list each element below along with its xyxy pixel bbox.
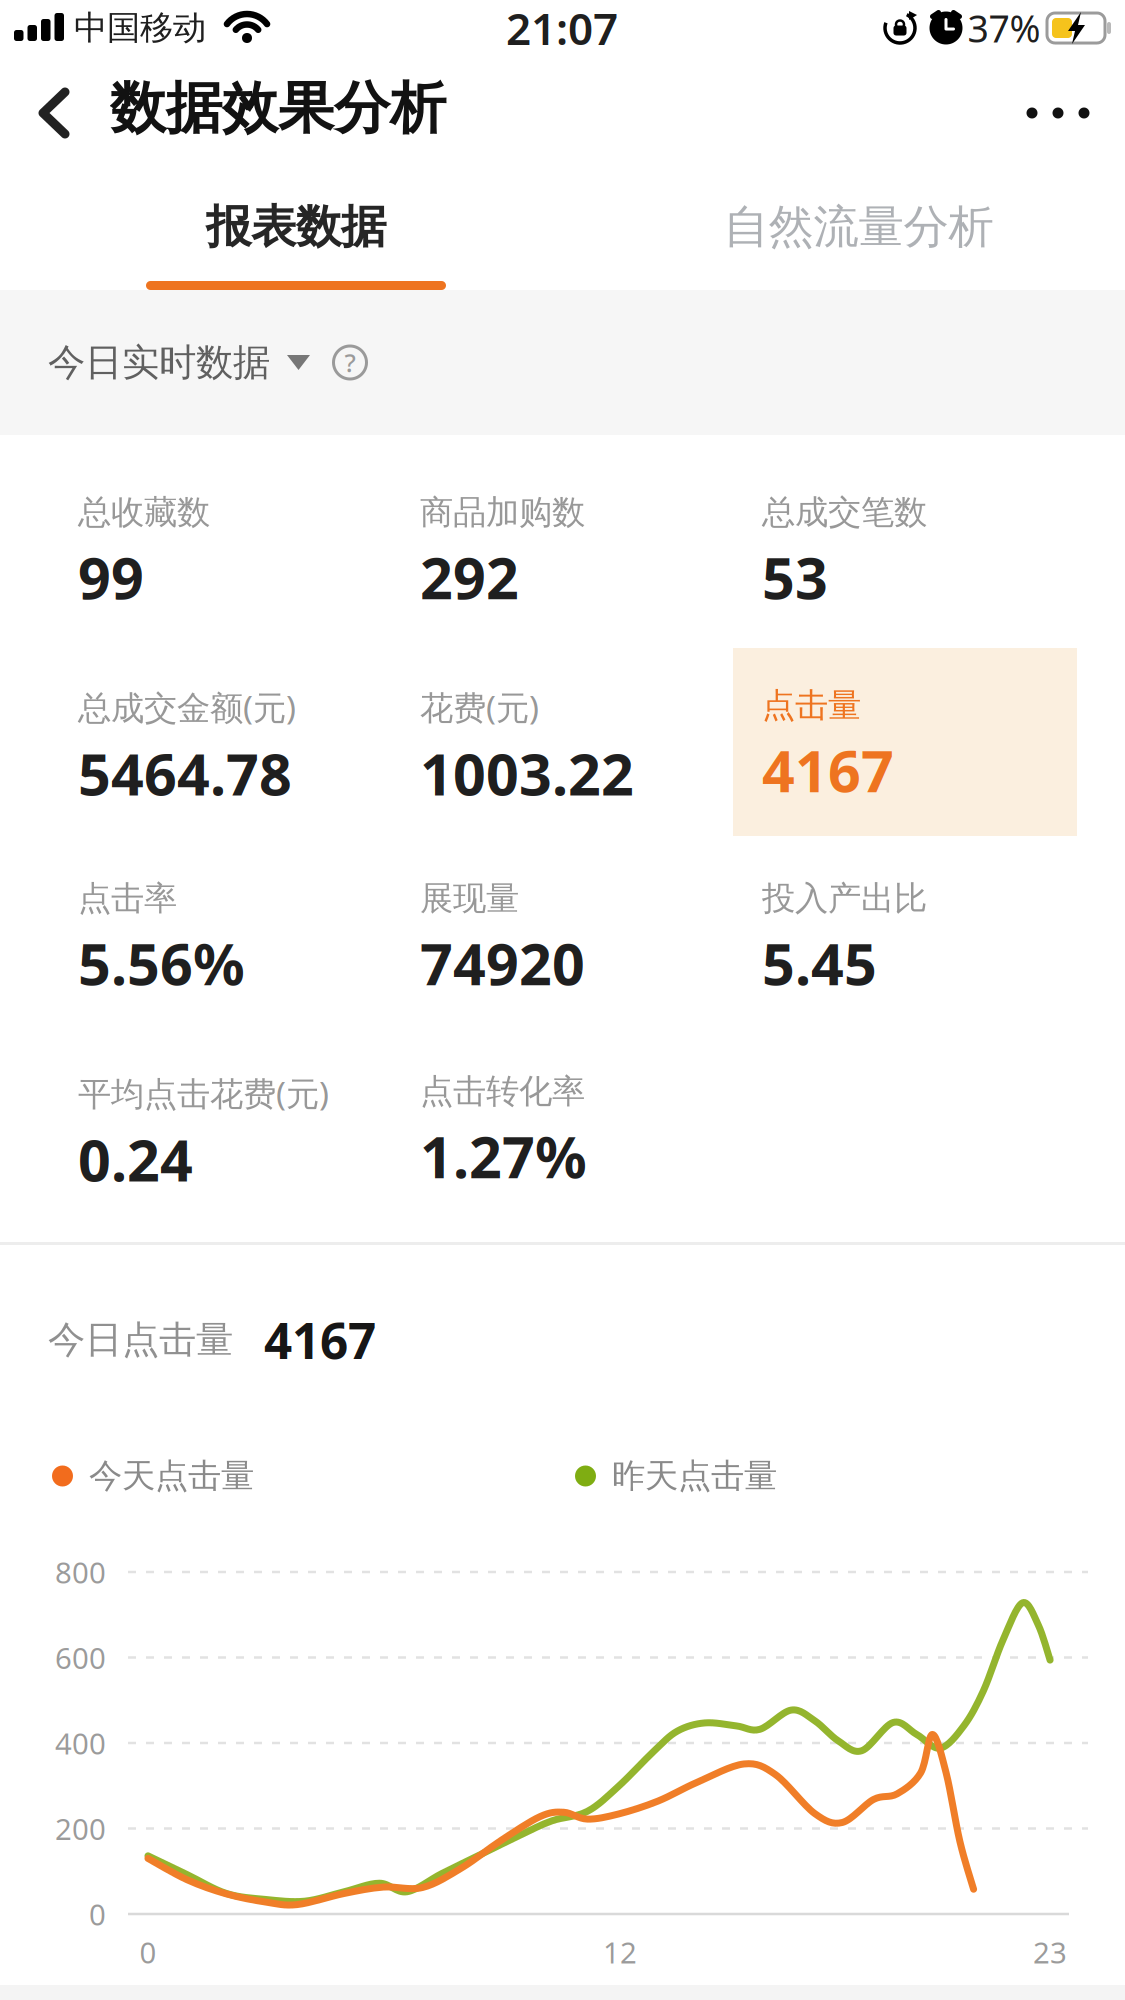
button[interactable]: 报表数据	[0, 172, 562, 282]
staticText: 5.56%	[78, 925, 245, 1001]
staticText: 昨天点击量	[612, 1455, 777, 1496]
staticText: 今天点击量	[89, 1455, 254, 1496]
staticText: 今日点击量	[48, 1317, 233, 1363]
staticText: 展现量	[420, 878, 519, 919]
staticText: 37%	[967, 3, 1040, 53]
staticText: 投入产出比	[762, 878, 927, 919]
staticText: 报表数据	[206, 199, 386, 255]
staticText: 0	[139, 1932, 156, 1971]
staticText: 21:07	[506, 0, 618, 57]
button[interactable]: 总收藏数	[78, 492, 420, 685]
button[interactable]: 点击率	[78, 878, 420, 1071]
staticText: 总成交金额(元)	[78, 685, 296, 729]
staticText: 23	[1033, 1932, 1067, 1971]
staticText: 4167	[264, 1307, 376, 1372]
staticText: 600	[55, 1638, 106, 1677]
button[interactable]: 昨天点击量	[575, 1446, 995, 1506]
staticText: 4167	[762, 732, 894, 808]
staticText: 点击量	[762, 685, 861, 726]
button[interactable]: More	[1014, 85, 1102, 141]
staticText: 53	[762, 539, 828, 615]
staticText: 自然流量分析	[723, 199, 993, 255]
staticText: 800	[55, 1552, 106, 1591]
staticText: 1.27%	[420, 1118, 587, 1194]
staticText: 平均点击花费(元)	[78, 1071, 329, 1115]
staticText: 400	[55, 1723, 106, 1762]
staticText: 中国移动	[74, 7, 206, 48]
button[interactable]: 点击转化率	[420, 1071, 762, 1264]
button[interactable]: Back	[38, 87, 72, 139]
button[interactable]: 自然流量分析	[562, 172, 1125, 282]
button[interactable]: 今日实时数据	[48, 340, 310, 385]
staticText: 5.45	[762, 925, 877, 1001]
staticText: 点击转化率	[420, 1071, 585, 1112]
button[interactable]: 总成交金额(元)	[78, 685, 420, 878]
staticText: 今日实时数据	[48, 340, 270, 385]
staticText: ?	[344, 346, 355, 379]
button[interactable]: 点击量	[762, 685, 1104, 878]
button[interactable]: 平均点击花费(元)	[78, 1071, 420, 1264]
button[interactable]: Help	[322, 334, 378, 390]
staticText: 1003.22	[420, 735, 634, 811]
staticText: 花费(元)	[420, 685, 539, 729]
staticText: 总收藏数	[78, 492, 210, 533]
staticText: 商品加购数	[420, 492, 585, 533]
staticText: 12	[603, 1932, 637, 1971]
staticText: 99	[78, 539, 144, 615]
button[interactable]: 商品加购数	[420, 492, 762, 685]
staticText: 5464.78	[78, 735, 292, 811]
staticText: 0	[89, 1894, 106, 1933]
button[interactable]: 花费(元)	[420, 685, 762, 878]
staticText: 数据效果分析	[110, 74, 446, 143]
staticText: 292	[420, 539, 519, 615]
button[interactable]: 总成交笔数	[762, 492, 1104, 685]
staticText: 点击率	[78, 878, 177, 919]
staticText: 74920	[420, 925, 585, 1001]
button[interactable]: 今天点击量	[52, 1446, 472, 1506]
button[interactable]: 展现量	[420, 878, 762, 1071]
button[interactable]: 投入产出比	[762, 878, 1104, 1071]
staticText: 0.24	[78, 1121, 193, 1197]
staticText: 总成交笔数	[762, 492, 927, 533]
staticText: 200	[55, 1809, 106, 1848]
